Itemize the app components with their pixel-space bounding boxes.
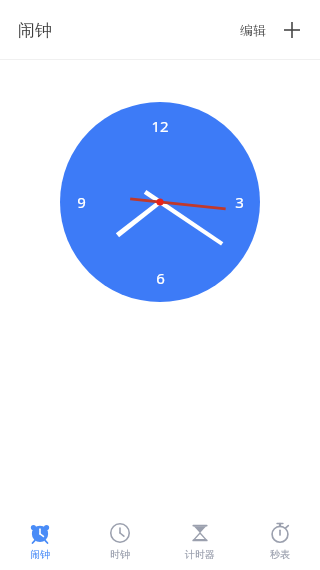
button[interactable]: 秒表 xyxy=(240,516,320,567)
button[interactable]: 时钟 xyxy=(80,516,160,567)
staticText: 时钟 xyxy=(110,548,130,561)
button[interactable]: 计时器 xyxy=(160,516,240,567)
staticText: 3 xyxy=(235,192,244,212)
staticText: 9 xyxy=(77,192,86,212)
staticText: 计时器 xyxy=(185,548,215,561)
button[interactable]: Add alarm xyxy=(278,16,306,44)
staticText: 12 xyxy=(151,116,169,136)
button[interactable]: 编辑 xyxy=(234,16,272,44)
staticText: 6 xyxy=(156,268,165,288)
staticText: 编辑 xyxy=(240,22,266,38)
staticText: 闹钟 xyxy=(18,20,52,41)
button[interactable]: 闹钟 xyxy=(18,20,52,41)
button[interactable]: 闹钟 xyxy=(0,516,80,567)
staticText: 秒表 xyxy=(270,548,290,561)
staticText: 闹钟 xyxy=(30,548,50,561)
